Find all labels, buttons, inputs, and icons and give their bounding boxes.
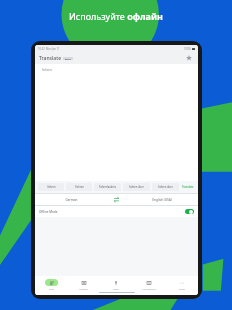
staticText: fahren über	[129, 185, 144, 189]
staticText: fahren	[42, 68, 52, 72]
button[interactable]: fahren über	[123, 183, 150, 191]
button[interactable]: fahren	[38, 183, 64, 191]
button[interactable]: More	[165, 278, 198, 291]
button[interactable]: Saved translations	[184, 53, 194, 63]
button[interactable]: fahren über	[152, 183, 179, 191]
button[interactable]: Camera	[67, 278, 99, 291]
button[interactable]: Fahrerlaubnis	[94, 183, 121, 191]
button[interactable]: Text	[35, 278, 67, 291]
button[interactable]: German	[35, 194, 107, 205]
button[interactable]: Offline Mode	[35, 206, 198, 217]
staticText: Phrasebook	[142, 287, 156, 290]
button[interactable]: Fahren	[66, 183, 92, 191]
button[interactable]: Voice	[99, 278, 132, 291]
staticText: Voice	[113, 287, 119, 290]
button[interactable]: Translate	[182, 183, 194, 191]
staticText: 10:22 Mon Jan 11	[38, 47, 60, 51]
button[interactable]: Phrasebook	[132, 278, 165, 291]
staticText: English (USA)	[152, 198, 172, 202]
staticText: German	[65, 198, 78, 202]
button[interactable]: Swap languages	[107, 194, 125, 205]
staticText: Fahren	[75, 185, 84, 189]
staticText: fahren über	[158, 185, 173, 189]
staticText: Translate	[182, 185, 194, 189]
staticText: Используйте офлайн	[69, 10, 163, 22]
staticText: Translate	[39, 55, 61, 62]
staticText: Offline Mode	[39, 210, 58, 214]
staticText: fahren	[47, 185, 56, 189]
staticText: 100%	[184, 47, 191, 51]
staticText: Fahrerlaubnis	[99, 185, 116, 189]
staticText: More	[179, 287, 185, 290]
staticText: BETA	[65, 57, 71, 60]
staticText: Camera	[79, 287, 88, 290]
button[interactable]: English (USA)	[125, 194, 198, 205]
staticText: Text	[49, 287, 54, 290]
